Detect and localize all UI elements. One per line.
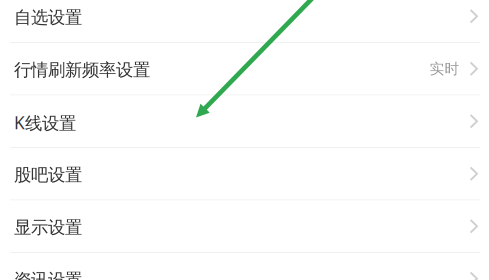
staticText: 行情刷新频率设置 [14, 59, 150, 81]
button[interactable]: 股吧设置 [0, 148, 489, 199]
button[interactable]: 资讯设置 [0, 253, 489, 280]
staticText: 自选设置 [14, 7, 82, 28]
button[interactable]: 显示设置 [0, 200, 489, 252]
staticText: K线设置 [14, 111, 76, 134]
staticText: 股吧设置 [14, 164, 82, 186]
staticText: 显示设置 [14, 217, 82, 238]
staticText: 实时 [430, 60, 460, 78]
button[interactable]: 自选设置 [0, 0, 489, 42]
button[interactable]: K线设置 [0, 95, 489, 147]
button[interactable]: 行情刷新频率设置 [0, 43, 489, 94]
staticText: 资讯设置 [14, 269, 82, 280]
